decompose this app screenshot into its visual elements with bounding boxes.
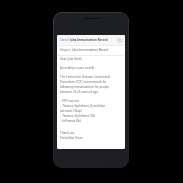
staticText: Julia Immunization Record [72, 48, 109, 52]
staticText: – Influenza (flu) [60, 119, 82, 123]
staticText: The Centers for Disease Control and Prev… [60, 74, 112, 94]
button[interactable]: Cancel [60, 38, 69, 42]
staticText: Cancel [60, 38, 69, 42]
staticText: Dear Julia Smith, [60, 57, 83, 61]
button[interactable]: Account info [117, 38, 122, 43]
staticText: According to your profile [60, 66, 95, 70]
staticText: PocketVax Team [60, 136, 83, 140]
staticText: Thank you, [60, 131, 76, 135]
staticText: – Tetanus, diphtheria (Td) [60, 114, 95, 118]
staticText: – HPV vaccine [60, 99, 79, 103]
staticText: Subject: [60, 48, 71, 52]
staticText: Julia Immunization Record [70, 38, 108, 42]
staticText: – Tetanus, diphtheria, & acellular pertu… [60, 103, 110, 113]
